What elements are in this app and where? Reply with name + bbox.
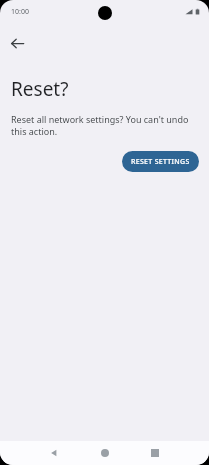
button[interactable]: Home bbox=[94, 442, 116, 464]
button[interactable]: Back bbox=[43, 442, 65, 464]
button[interactable]: Recent apps bbox=[144, 442, 166, 464]
button[interactable]: RESET SETTINGS bbox=[122, 151, 199, 172]
staticText: Reset all network settings? You can't un… bbox=[11, 113, 198, 138]
staticText: RESET SETTINGS bbox=[131, 157, 190, 167]
staticText: Reset? bbox=[11, 76, 69, 102]
button[interactable]: Back bbox=[3, 29, 31, 57]
staticText: 10:00 bbox=[11, 7, 29, 17]
